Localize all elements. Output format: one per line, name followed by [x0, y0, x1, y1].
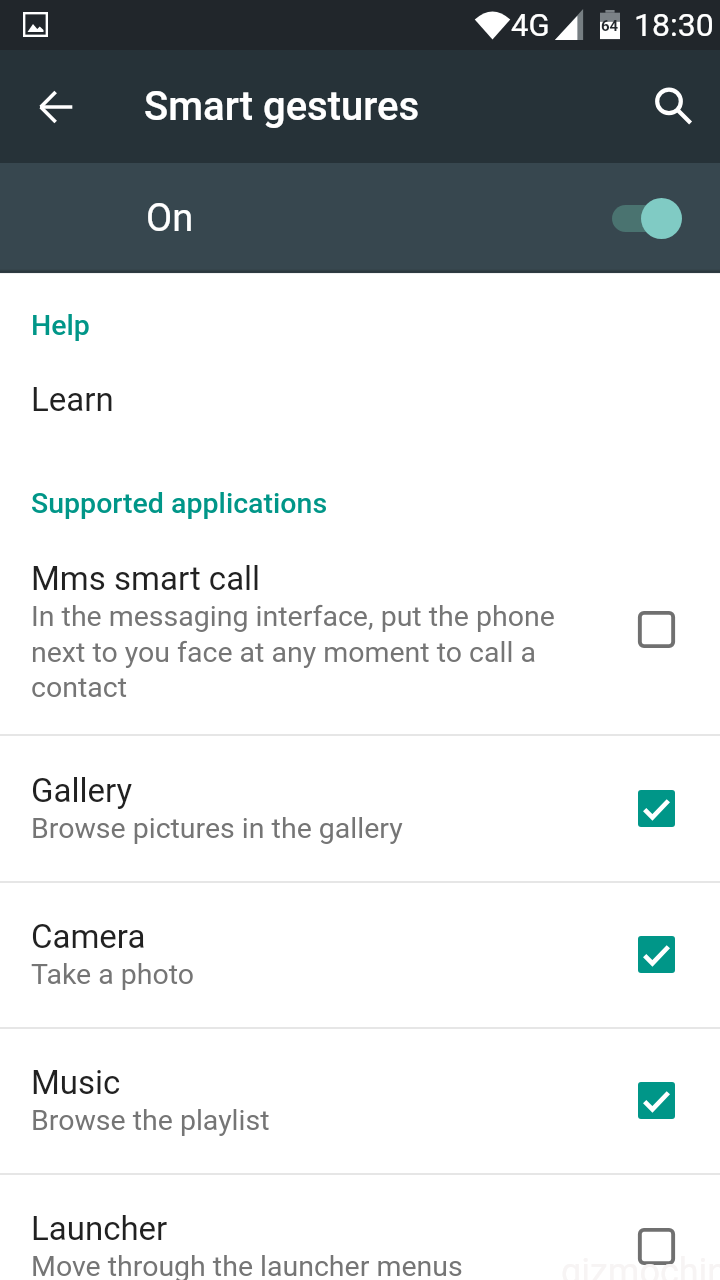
button[interactable]: Enabled [630, 928, 682, 980]
button[interactable]: Launcher [0, 1173, 720, 1280]
staticText: Camera [31, 917, 146, 956]
staticText: Launcher [31, 1209, 168, 1248]
staticText: Browse pictures in the gallery [31, 812, 403, 845]
staticText: Supported applications [31, 487, 328, 520]
button[interactable]: On [0, 163, 720, 273]
button[interactable]: Disabled [630, 1220, 682, 1272]
staticText: gizmochina [561, 1251, 720, 1280]
staticText: Gallery [31, 771, 133, 810]
staticText: Move through the launcher menus [31, 1250, 463, 1280]
staticText: Learn [31, 380, 114, 419]
button[interactable]: Enabled [630, 1074, 682, 1126]
staticText: Browse the playlist [31, 1104, 270, 1137]
button[interactable]: Music [0, 1027, 720, 1173]
button[interactable]: Back [20, 71, 92, 143]
staticText: Take a photo [31, 958, 195, 991]
button[interactable]: Camera [0, 881, 720, 1027]
button[interactable]: Search [632, 67, 712, 147]
staticText: 18:30 [634, 6, 714, 44]
button[interactable]: Disabled [630, 603, 682, 655]
staticText: 4G [511, 7, 550, 43]
staticText: Music [31, 1063, 121, 1102]
staticText: Mms smart call [31, 559, 261, 598]
button[interactable]: Gallery [0, 734, 720, 881]
button[interactable]: Toggle smart gestures [612, 196, 682, 240]
button[interactable]: Mms smart call [0, 536, 720, 727]
staticText: Help [31, 309, 90, 342]
staticText: 64 [601, 17, 619, 35]
button[interactable]: Enabled [630, 782, 682, 834]
staticText: Smart gestures [144, 83, 420, 130]
button[interactable]: Learn [0, 367, 720, 429]
staticText: On [146, 196, 194, 241]
staticText: In the messaging interface, put the phon… [31, 600, 576, 704]
